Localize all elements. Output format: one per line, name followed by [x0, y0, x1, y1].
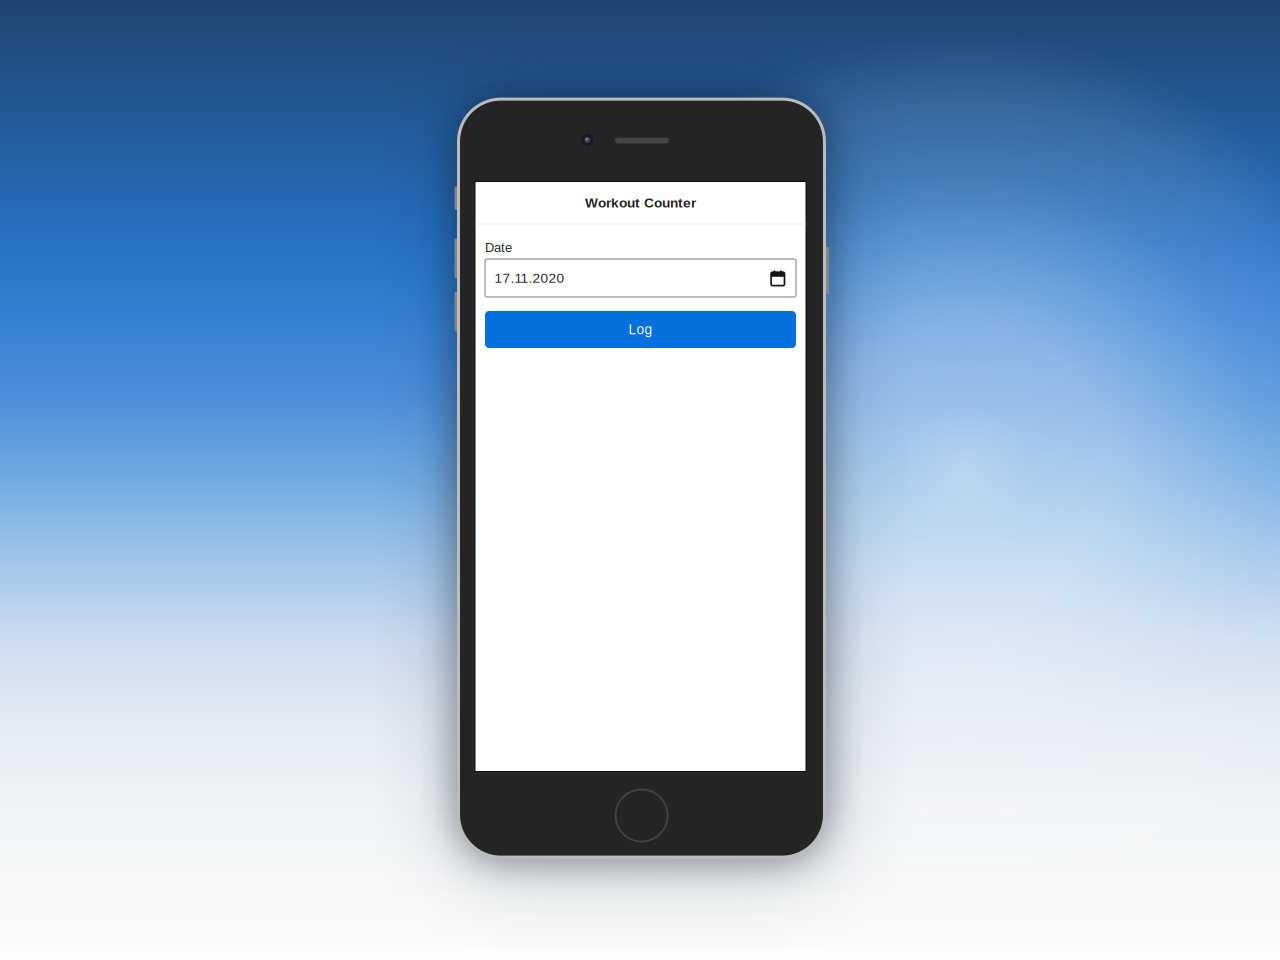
staticText: Date — [485, 240, 512, 255]
staticText: 17.11.2020 — [494, 270, 564, 286]
staticText: Log — [628, 322, 652, 337]
button[interactable]: Log — [485, 311, 796, 348]
staticText: Workout Counter — [585, 195, 696, 210]
